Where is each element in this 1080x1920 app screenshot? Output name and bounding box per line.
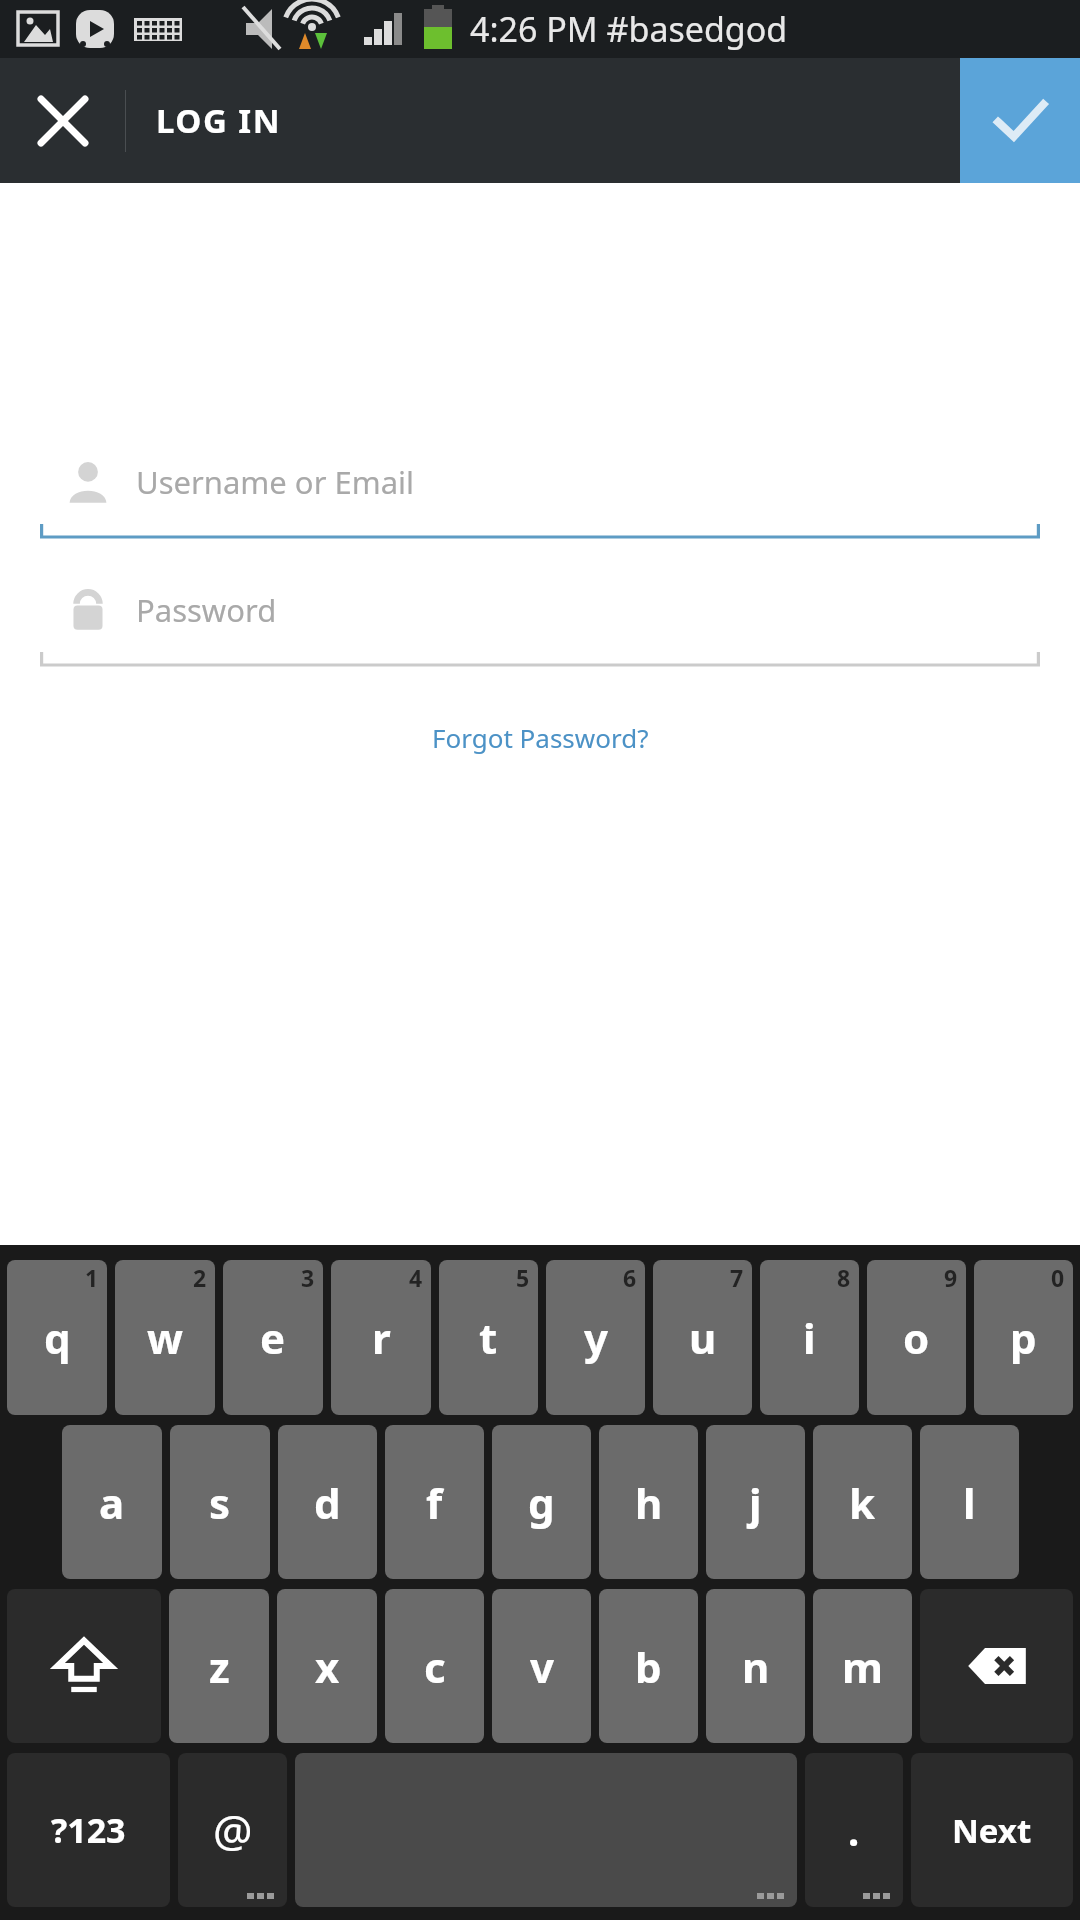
button[interactable]: w [115,1260,215,1415]
staticText: v [530,1638,554,1695]
staticText: 5 [516,1262,530,1293]
staticText: 3 [301,1262,315,1293]
button[interactable]: x [277,1589,377,1743]
button[interactable]: Next [911,1753,1073,1907]
button[interactable]: g [492,1425,591,1579]
staticText: y [584,1309,608,1366]
staticText: w [147,1309,183,1366]
button[interactable]: Password [40,566,1040,668]
button[interactable]: Period [805,1753,903,1907]
button[interactable]: Shift [7,1589,161,1743]
button[interactable]: z [169,1589,269,1743]
staticText: @ [213,1800,253,1860]
button[interactable]: i [760,1260,859,1415]
staticText: 8 [837,1262,851,1293]
button[interactable]: y [546,1260,645,1415]
button[interactable]: Confirm [960,58,1080,183]
button[interactable]: Symbols [7,1753,170,1907]
button[interactable]: At sign [178,1753,287,1907]
button[interactable]: h [599,1425,698,1579]
button[interactable]: Username or Email [40,438,1040,540]
button[interactable]: t [439,1260,538,1415]
button[interactable]: l [920,1425,1019,1579]
button[interactable]: q [7,1260,107,1415]
staticText: d [314,1474,341,1531]
staticText: 4:26 PM #basedgod [470,6,788,52]
staticText: a [99,1474,125,1531]
button[interactable]: u [653,1260,752,1415]
staticText: m [842,1638,883,1695]
button[interactable]: r [331,1260,431,1415]
staticText: f [426,1474,443,1531]
staticText: u [689,1309,717,1366]
button[interactable]: e [223,1260,323,1415]
button[interactable]: Close [0,58,125,183]
staticText: g [528,1474,555,1531]
staticText: ?123 [51,1807,126,1853]
button[interactable]: Forgot Password? [412,710,669,765]
button[interactable]: k [813,1425,912,1579]
button[interactable]: d [278,1425,377,1579]
staticText: e [260,1309,286,1366]
staticText: 6 [623,1262,637,1293]
staticText: 1 [85,1262,99,1293]
staticText: r [372,1309,391,1366]
staticText: o [903,1309,930,1366]
staticText: Forgot Password? [432,720,649,755]
button[interactable]: Space [295,1753,797,1907]
button[interactable]: b [599,1589,698,1743]
button[interactable]: v [492,1589,591,1743]
button[interactable]: a [62,1425,162,1579]
staticText: 2 [193,1262,207,1293]
staticText: 9 [944,1262,958,1293]
staticText: l [963,1474,976,1531]
button[interactable]: c [385,1589,484,1743]
staticText: n [742,1638,770,1695]
button[interactable]: f [385,1425,484,1579]
staticText: 0 [1051,1262,1065,1293]
staticText: h [635,1474,663,1531]
staticText: Password [136,589,277,631]
staticText: i [803,1309,816,1366]
staticText: z [209,1638,230,1695]
staticText: 7 [730,1262,744,1293]
staticText: j [749,1474,762,1531]
button[interactable]: p [974,1260,1073,1415]
button[interactable]: j [706,1425,805,1579]
staticText: 4 [409,1262,423,1293]
staticText: t [479,1309,498,1366]
staticText: LOG IN [156,98,282,143]
button[interactable]: Backspace [920,1589,1073,1743]
button[interactable]: o [867,1260,966,1415]
button[interactable]: m [813,1589,912,1743]
staticText: k [849,1474,876,1531]
button[interactable]: s [170,1425,270,1579]
staticText: q [44,1309,71,1366]
staticText: s [209,1474,231,1531]
staticText: b [635,1638,662,1695]
button[interactable]: n [706,1589,805,1743]
staticText: p [1010,1309,1037,1366]
staticText: Next [952,1808,1032,1853]
staticText: x [315,1638,340,1695]
staticText: c [424,1638,446,1695]
staticText: . [848,1803,860,1857]
staticText: Username or Email [136,461,415,503]
